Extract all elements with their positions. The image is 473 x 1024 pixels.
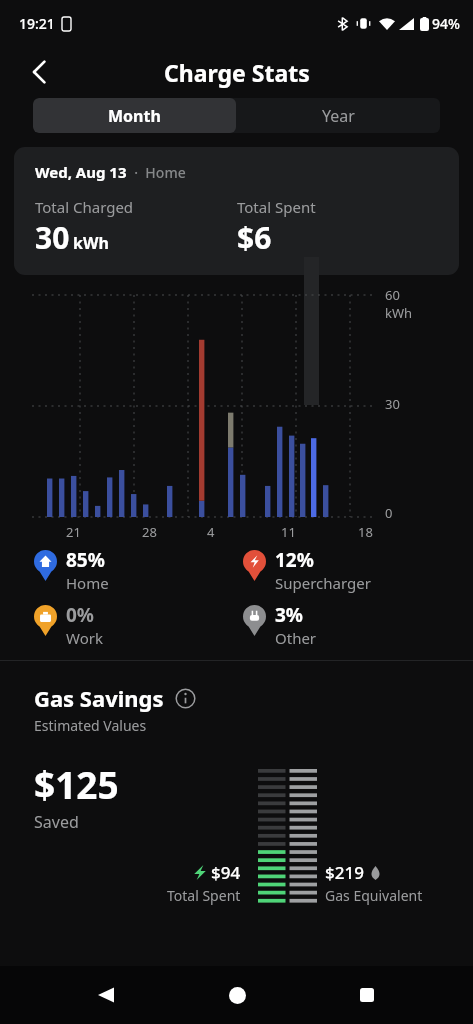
staticText: 11	[281, 523, 296, 541]
button[interactable]: Month	[33, 98, 236, 133]
staticText: Charge Stats	[164, 57, 310, 88]
staticText: Year	[322, 105, 355, 127]
button[interactable]: Recent apps	[343, 971, 391, 1019]
button[interactable]: Year	[236, 98, 440, 133]
staticText: 60	[385, 286, 400, 304]
staticText: $6	[237, 217, 272, 258]
staticText: Total Spent	[167, 886, 241, 905]
staticText: 85%	[66, 547, 105, 573]
staticText: 18	[358, 523, 373, 541]
staticText: $94	[211, 861, 241, 884]
staticText: Estimated Values	[34, 716, 147, 735]
button[interactable]: Back	[82, 971, 130, 1019]
staticText: 30	[385, 395, 400, 413]
staticText: 19:21	[19, 14, 55, 33]
staticText: 0	[385, 504, 393, 522]
button[interactable]: 85%	[34, 547, 243, 593]
button[interactable]: 12%	[243, 547, 453, 593]
staticText: 12%	[275, 547, 314, 573]
staticText: kWh	[73, 232, 109, 254]
button[interactable]: Wed, Aug 13	[14, 147, 459, 275]
button[interactable]: Home	[213, 971, 261, 1019]
staticText: · Home	[127, 163, 186, 182]
staticText: 94%	[432, 14, 460, 33]
staticText: Other	[275, 628, 317, 648]
staticText: 3%	[275, 602, 304, 628]
staticText: 28	[142, 523, 157, 541]
staticText: Home	[66, 573, 109, 593]
button[interactable]: Back	[18, 51, 60, 93]
button[interactable]: 3%	[243, 602, 453, 648]
staticText: 21	[66, 523, 81, 541]
staticText: Gas Savings	[34, 683, 164, 713]
staticText: Supercharger	[275, 573, 371, 593]
button[interactable]: 0%	[34, 602, 243, 648]
staticText: Gas Equivalent	[325, 886, 423, 905]
staticText: Total Charged	[35, 197, 134, 217]
staticText: Work	[66, 628, 103, 648]
staticText: $219	[325, 861, 364, 884]
staticText: Total Spent	[237, 197, 316, 217]
staticText: 4	[207, 523, 215, 541]
staticText: 30	[35, 217, 70, 258]
staticText: 0%	[66, 602, 95, 628]
staticText: Saved	[34, 811, 79, 833]
staticText: kWh	[385, 304, 413, 322]
button[interactable]: Info about gas savings	[175, 688, 196, 709]
staticText: Month	[108, 105, 161, 127]
staticText: Wed, Aug 13	[35, 162, 127, 182]
staticText: $125	[34, 759, 119, 809]
